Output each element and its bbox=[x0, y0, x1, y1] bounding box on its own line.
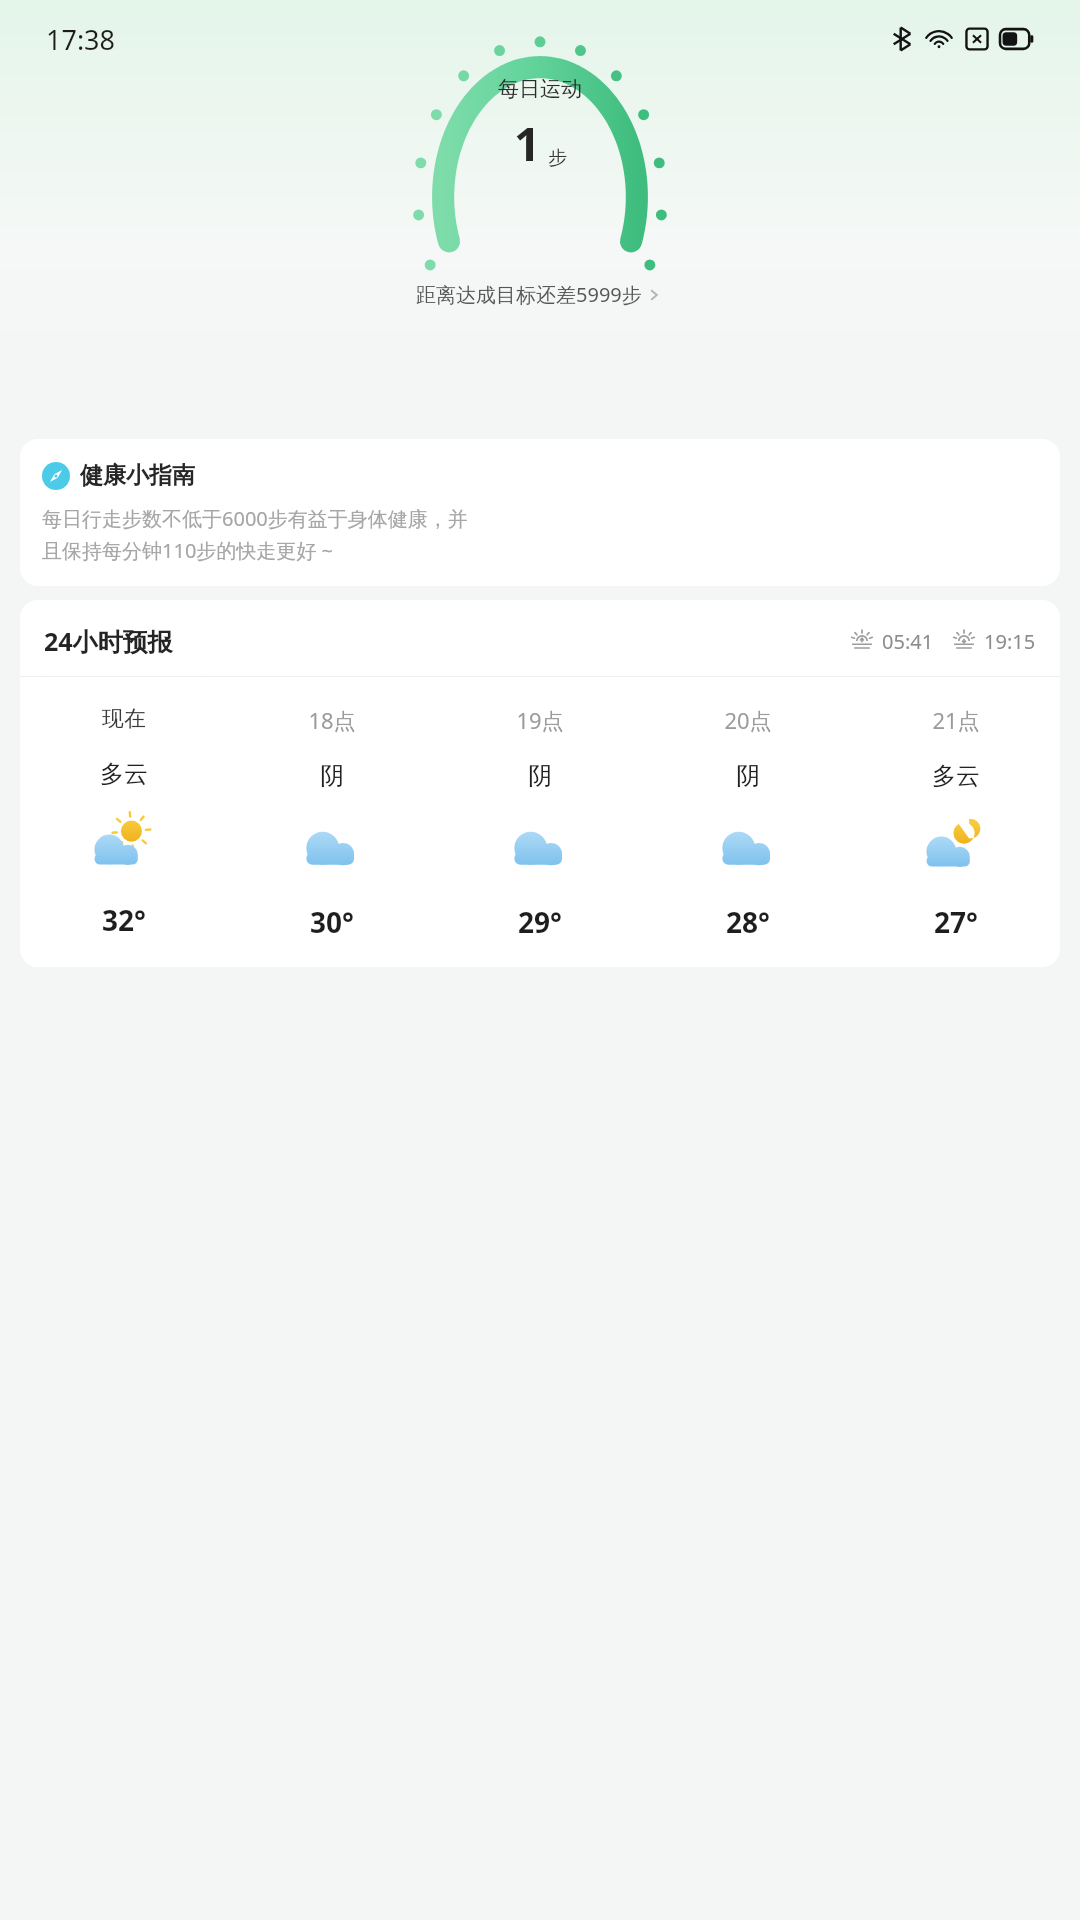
staticText: 17:38 bbox=[46, 21, 116, 58]
staticText: 距离达成目标还差5999步 bbox=[416, 281, 642, 308]
button[interactable]: 18点 bbox=[228, 677, 436, 967]
button[interactable]: 19点 bbox=[436, 677, 644, 967]
staticText: 29° bbox=[518, 903, 562, 941]
staticText: 阴 bbox=[736, 761, 760, 791]
button[interactable]: 距离达成目标还差5999步 bbox=[410, 277, 670, 312]
staticText: 05:41 bbox=[882, 628, 934, 655]
button[interactable]: 健康小指南 bbox=[20, 439, 1060, 586]
other: 日出 bbox=[849, 628, 875, 654]
staticText: 32° bbox=[102, 901, 146, 939]
staticText: 24小时预报 bbox=[44, 624, 173, 658]
staticText: 27° bbox=[934, 903, 978, 941]
staticText: 多云 bbox=[100, 759, 148, 789]
staticText: 30° bbox=[310, 903, 354, 941]
staticText: 21点 bbox=[932, 705, 980, 735]
staticText: 多云 bbox=[932, 761, 980, 791]
staticText: 阴 bbox=[528, 761, 552, 791]
staticText: 19点 bbox=[516, 705, 564, 735]
staticText: 1 bbox=[514, 112, 541, 175]
staticText: 19:15 bbox=[984, 628, 1036, 655]
staticText: 每日行走步数不低于6000步有益于身体健康，并 且保持每分钟110步的快走更好 … bbox=[42, 505, 468, 564]
staticText: 每日运动 bbox=[498, 76, 582, 102]
staticText: 步 bbox=[548, 146, 567, 170]
staticText: 健康小指南 bbox=[80, 461, 195, 490]
staticText: 20点 bbox=[724, 705, 772, 735]
staticText: 28° bbox=[726, 903, 770, 941]
other: 健康小指南 bbox=[42, 462, 70, 490]
button[interactable]: 24小时预报 bbox=[20, 600, 1060, 676]
other: 日落 bbox=[951, 628, 977, 654]
staticText: 阴 bbox=[320, 761, 344, 791]
staticText: 现在 bbox=[102, 705, 146, 733]
button[interactable]: 21点 bbox=[852, 677, 1060, 967]
staticText: 18点 bbox=[308, 705, 356, 735]
button[interactable]: 20点 bbox=[644, 677, 852, 967]
button[interactable]: 现在 bbox=[20, 677, 228, 967]
